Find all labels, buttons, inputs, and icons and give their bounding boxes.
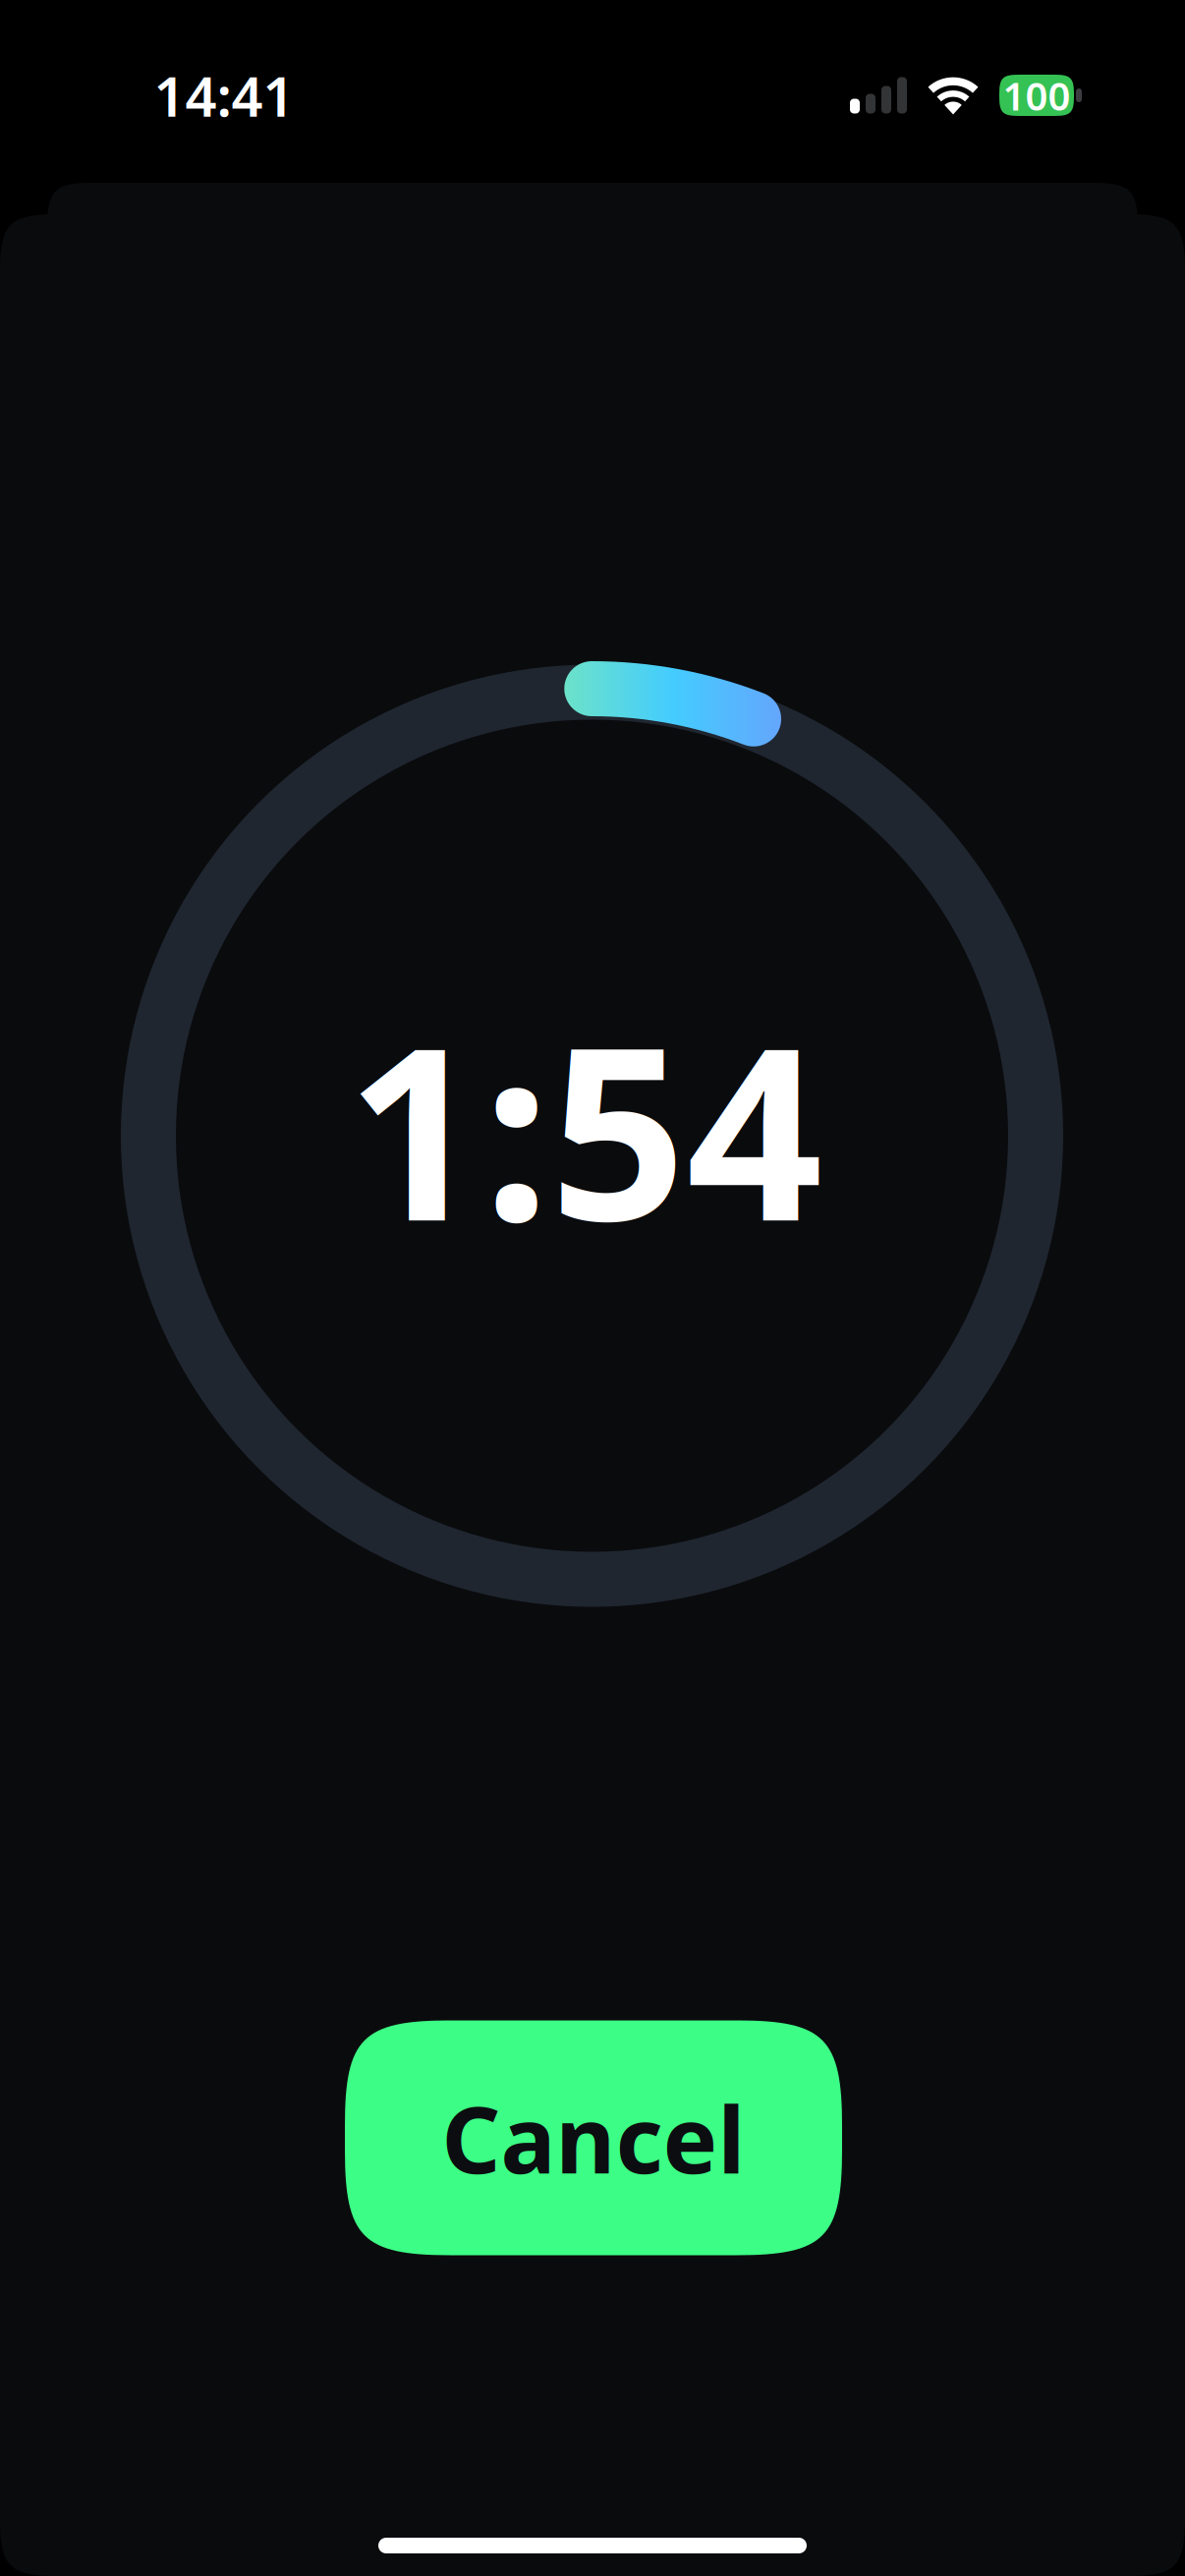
staticText: 14:41 — [154, 59, 294, 132]
staticText: Cancel — [442, 2077, 745, 2199]
staticText: 100 — [1003, 69, 1071, 121]
button[interactable]: Cancel timer — [345, 2020, 842, 2255]
staticText: 1:54 — [346, 970, 823, 1286]
